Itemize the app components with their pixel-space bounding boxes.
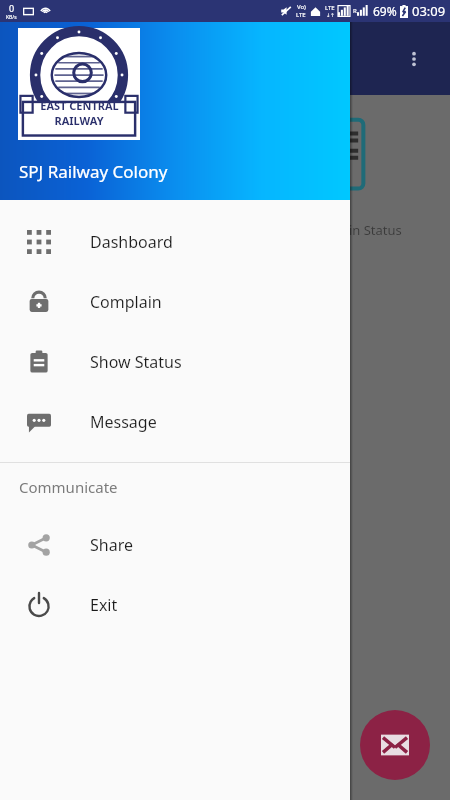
button[interactable]: Complain	[0, 272, 350, 332]
staticText: 03:09	[412, 2, 446, 20]
button[interactable]: More options	[392, 37, 436, 81]
staticText: Dashboard	[90, 231, 173, 253]
staticText: R	[353, 7, 357, 15]
staticText: 69%	[373, 3, 397, 19]
staticText: Vo)	[297, 3, 306, 11]
staticText: Complain Status	[302, 221, 402, 239]
staticText: EAST CENTRAL	[40, 98, 119, 113]
staticText: Exit	[90, 594, 118, 616]
staticText: Complain	[90, 291, 162, 313]
staticText: ↓↑	[326, 12, 335, 18]
staticText: SPJ Railway Colony	[19, 160, 168, 183]
staticText: Status	[308, 199, 350, 217]
button[interactable]: Message	[0, 392, 350, 452]
staticText: KB/s	[6, 14, 17, 21]
button[interactable]: Share	[0, 515, 350, 575]
button[interactable]: Exit	[0, 575, 350, 635]
button[interactable]: Compose message	[360, 710, 430, 780]
staticText: Message	[90, 411, 157, 433]
staticText: Show Status	[90, 351, 182, 373]
staticText: LTE	[325, 4, 335, 12]
staticText: LTE	[296, 11, 306, 19]
staticText: Communicate	[19, 477, 118, 497]
button[interactable]: Dashboard	[0, 212, 350, 272]
staticText: Share	[90, 534, 133, 556]
staticText: RAILWAY	[54, 113, 104, 128]
button[interactable]: Show Status	[0, 332, 350, 392]
staticText: 0	[9, 2, 15, 14]
